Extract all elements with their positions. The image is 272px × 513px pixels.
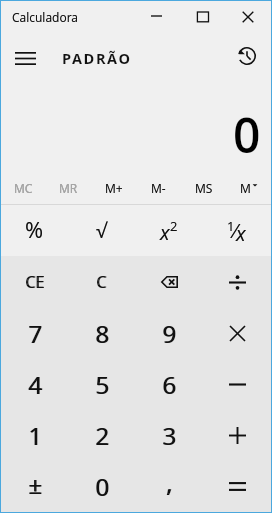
button[interactable]: MS [181,172,226,204]
staticText: 7 [29,317,43,350]
staticText: 5 [96,368,110,401]
button[interactable]: Backspace [135,256,203,308]
staticText: MR [59,180,78,196]
staticText: CE [25,271,44,293]
staticText: 0 [233,102,261,167]
button[interactable]: 4 [1,359,68,410]
staticText: M [240,180,251,196]
button[interactable]: History [226,35,268,77]
staticText: 1 [227,217,235,235]
button[interactable]: Subtract [203,359,271,410]
staticText: C [96,271,107,293]
staticText: 8 [96,317,110,350]
button[interactable]: Close [225,1,271,35]
button[interactable]: % [1,205,68,256]
button[interactable]: x [135,205,203,256]
button[interactable]: , [135,461,203,512]
staticText: ± [28,468,42,501]
button[interactable]: 5 [68,359,135,410]
staticText: x [160,219,170,246]
button[interactable]: M [226,172,271,204]
staticText: 2 [170,217,178,235]
button[interactable]: Minimize [136,1,181,35]
staticText: 1 [28,419,42,452]
staticText: , [166,466,172,499]
staticText: 4 [29,368,43,401]
staticText: 6 [163,368,177,401]
staticText: MR [59,180,78,196]
staticText: , [167,466,173,499]
staticText: 4 [28,368,42,401]
button[interactable]: C [68,256,135,308]
staticText: 8 [95,317,109,350]
button[interactable]: √ [68,205,135,256]
staticText: MC [14,180,33,196]
staticText: 0 [95,470,109,503]
staticText: MS [195,180,213,196]
staticText: 1 [29,419,43,452]
staticText: % [25,214,44,244]
button[interactable]: 1 [203,205,271,256]
button[interactable]: 0 [68,461,135,512]
staticText: x [236,220,246,247]
staticText: MC [14,180,33,196]
staticText: 3 [162,419,176,452]
staticText: 5 [95,368,109,401]
staticText: C [97,271,108,293]
button[interactable]: CE [1,256,68,308]
staticText: % [25,214,44,244]
staticText: 9 [163,317,177,350]
staticText: 2 [96,419,110,452]
button[interactable]: 9 [135,308,203,359]
button[interactable]: Menu [4,37,46,79]
staticText: ⁄ [234,217,237,244]
staticText: x [160,219,170,246]
staticText: √ [96,217,107,244]
staticText: 7 [28,317,42,350]
button[interactable]: Maximize [181,1,225,35]
staticText: 0 [96,470,110,503]
button[interactable]: ± [1,461,68,512]
staticText: CE [26,271,45,293]
button[interactable]: 8 [68,308,135,359]
button[interactable]: 1 [1,410,68,461]
button[interactable]: Multiply [203,308,271,359]
button[interactable]: 2 [68,410,135,461]
button[interactable]: M+ [91,172,136,204]
staticText: 2 [170,217,178,235]
staticText: ⁄ [234,217,237,244]
staticText: M+ [105,180,123,196]
button[interactable]: M- [136,172,181,204]
staticText: MS [195,180,213,196]
button[interactable]: Equals [203,461,271,512]
button[interactable]: 3 [135,410,203,461]
staticText: M+ [105,180,123,196]
staticText: 1 [227,217,235,235]
staticText: 6 [162,368,176,401]
staticText: 9 [162,317,176,350]
button[interactable]: 7 [1,308,68,359]
staticText: √ [96,217,107,244]
button[interactable]: Add [203,410,271,461]
staticText: M [240,180,251,196]
staticText: M- [151,180,166,196]
staticText: Calculadora [12,9,78,25]
button[interactable]: MC [1,172,46,204]
staticText: Calculadora [12,9,78,25]
staticText: 2 [95,419,109,452]
button[interactable]: Divide [203,256,271,308]
staticText: M- [151,180,166,196]
staticText: PADRÃO [62,49,132,69]
button[interactable]: 6 [135,359,203,410]
staticText: x [236,220,246,247]
button[interactable]: MR [46,172,91,204]
staticText: 3 [163,419,177,452]
staticText: ± [29,468,43,501]
